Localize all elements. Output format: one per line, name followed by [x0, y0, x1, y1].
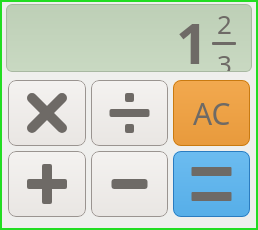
button[interactable]: 1	[6, 4, 252, 72]
button[interactable]: Plus	[8, 151, 86, 217]
button[interactable]: Multiply	[8, 80, 86, 146]
staticText: AC	[193, 93, 231, 134]
staticText: 1	[176, 4, 209, 72]
staticText: 3	[217, 46, 232, 72]
button[interactable]: Minus	[91, 151, 168, 217]
staticText: 2	[217, 6, 232, 41]
button[interactable]: AC	[173, 80, 250, 146]
button[interactable]: Equals	[173, 151, 250, 217]
button[interactable]: Divide	[91, 80, 168, 146]
